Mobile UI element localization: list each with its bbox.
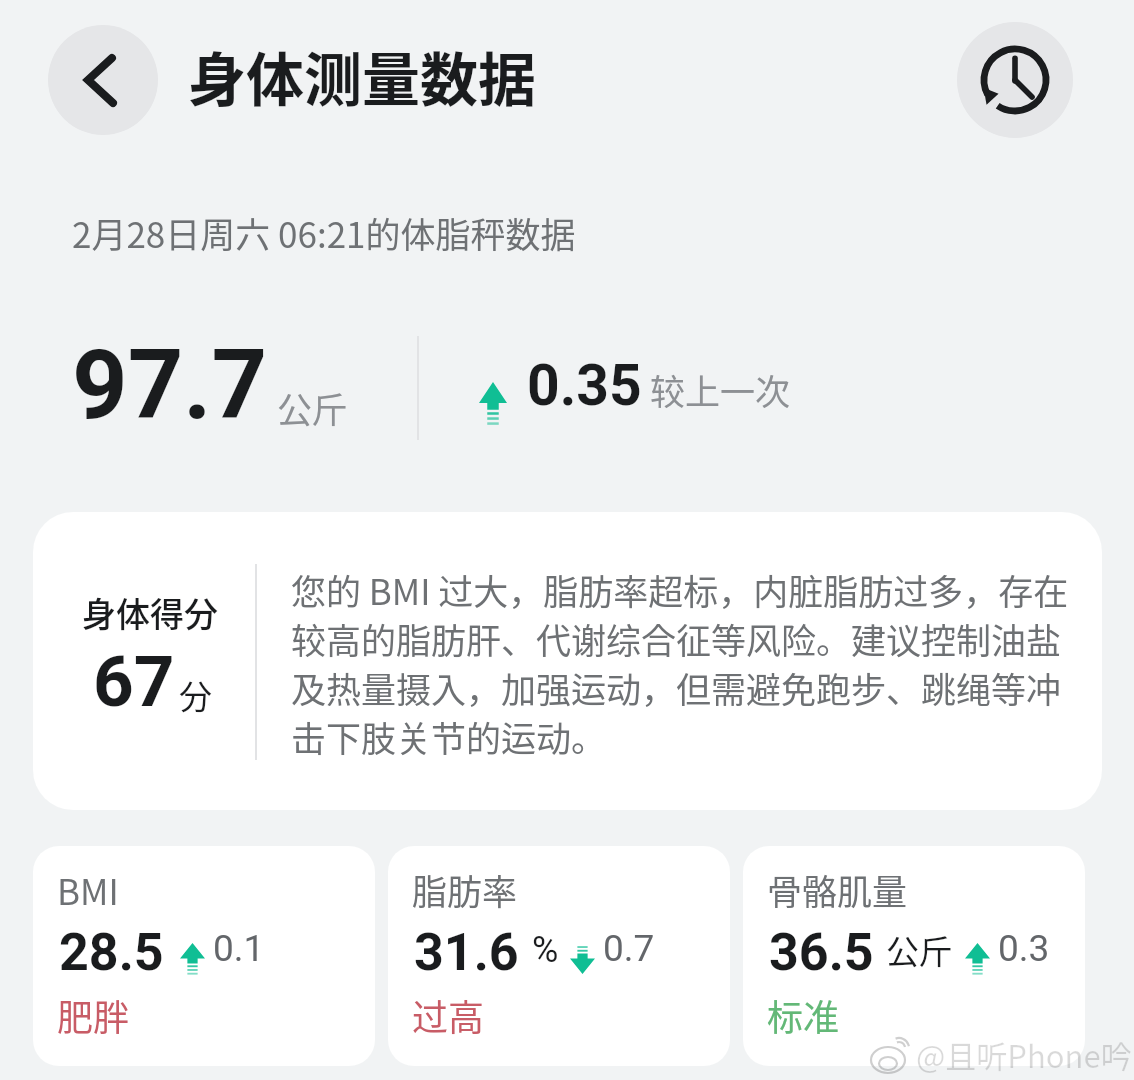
staticText: 公斤 bbox=[277, 382, 348, 433]
staticText: 身体得分 bbox=[82, 588, 218, 637]
staticText: BMI bbox=[57, 864, 119, 915]
staticText: 0.1 bbox=[213, 927, 265, 970]
staticText: 过高 bbox=[412, 989, 485, 1041]
button[interactable]: 骨骼肌量 bbox=[743, 846, 1085, 1066]
staticText: 97.7 bbox=[72, 328, 268, 438]
staticText: 0.7 bbox=[603, 927, 655, 970]
staticText: 2月28日周六 06:21的体脂秤数据 bbox=[72, 207, 576, 258]
staticText: % bbox=[532, 929, 559, 971]
staticText: 标准 bbox=[767, 989, 840, 1041]
staticText: 公斤 bbox=[886, 926, 952, 974]
staticText: 67 bbox=[93, 640, 175, 723]
staticText: 31.6 bbox=[414, 922, 519, 974]
button[interactable]: 脂肪率 bbox=[388, 846, 730, 1066]
staticText: @且听Phone吟 bbox=[916, 1032, 1132, 1077]
button[interactable]: BMI bbox=[33, 846, 375, 1066]
staticText: 您的 BMI 过大，脂肪率超标，内脏脂肪过多，存在较高的脂肪肝、代谢综合征等风险… bbox=[291, 564, 1073, 762]
staticText: 分 bbox=[179, 671, 212, 719]
staticText: 骨骼肌量 bbox=[767, 864, 908, 915]
staticText: 脂肪率 bbox=[412, 864, 518, 915]
staticText: 身体测量数据 bbox=[188, 34, 537, 118]
staticText: 0.35 bbox=[527, 352, 642, 419]
staticText: 28.5 bbox=[59, 922, 164, 974]
button[interactable]: 身体得分 bbox=[33, 512, 1102, 810]
button[interactable]: History bbox=[957, 22, 1073, 138]
staticText: 36.5 bbox=[769, 922, 874, 974]
staticText: 肥胖 bbox=[57, 989, 130, 1041]
staticText: 0.3 bbox=[998, 927, 1050, 970]
staticText: 较上一次 bbox=[650, 364, 791, 415]
button[interactable]: Back bbox=[48, 25, 158, 135]
